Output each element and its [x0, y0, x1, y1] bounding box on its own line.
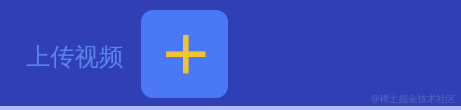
staticText: @稀土掘金技术社区	[371, 92, 456, 105]
button[interactable]: Upload video	[141, 10, 228, 98]
staticText: 上传视频	[26, 42, 124, 73]
